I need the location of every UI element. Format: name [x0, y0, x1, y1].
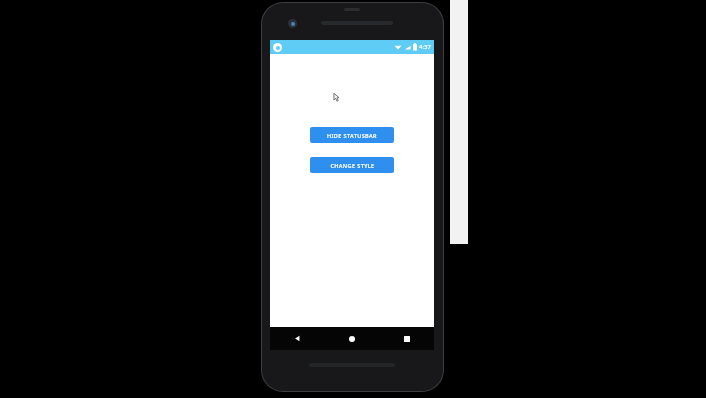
button[interactable]: Back: [270, 327, 324, 350]
button[interactable]: CHANGE STYLE: [310, 157, 394, 173]
button[interactable]: HIDE STATUSBAR: [310, 127, 394, 143]
staticText: HIDE STATUSBAR: [327, 132, 377, 139]
staticText: 4:37: [419, 43, 431, 51]
staticText: CHANGE STYLE: [330, 162, 375, 169]
button[interactable]: Home: [324, 327, 379, 350]
button[interactable]: Recent apps: [379, 327, 434, 350]
